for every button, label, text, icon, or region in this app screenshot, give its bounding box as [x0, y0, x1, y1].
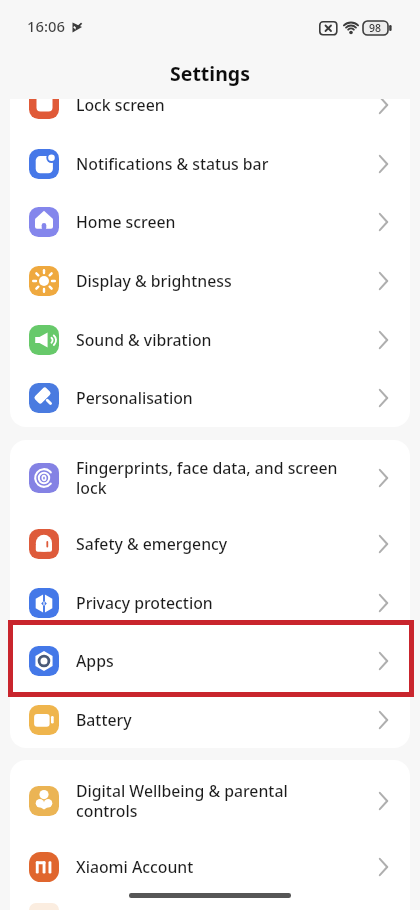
staticText: Display & brightness — [76, 270, 375, 292]
staticText: Fingerprints, face data, and screen lock — [76, 457, 375, 499]
button[interactable]: Privacy protection — [29, 573, 388, 632]
button[interactable]: Xiaomi Account — [29, 837, 388, 896]
staticText: Lock screen — [76, 99, 165, 116]
button[interactable]: Apps — [29, 631, 388, 690]
button[interactable]: Battery — [29, 690, 388, 748]
button[interactable]: Fingerprints, face data, and screen lock — [29, 441, 388, 514]
staticText: Sound & vibration — [76, 329, 375, 351]
staticText: Privacy protection — [76, 592, 375, 614]
button[interactable]: Home screen — [29, 192, 388, 251]
button[interactable]: Sound & vibration — [29, 310, 388, 369]
staticText: Personalisation — [76, 387, 375, 409]
button[interactable]: Display & brightness — [29, 251, 388, 310]
staticText: 98 — [369, 21, 382, 35]
staticText: Xiaomi Account — [76, 856, 375, 878]
button[interactable]: Lock screen — [10, 99, 410, 134]
button[interactable]: Notifications & status bar — [29, 134, 388, 193]
button[interactable]: Personalisation — [29, 368, 388, 427]
button[interactable]: Safety & emergency — [29, 514, 388, 573]
staticText: 16:06 — [27, 16, 65, 36]
staticText: Safety & emergency — [76, 533, 375, 555]
staticText: Battery — [76, 709, 375, 731]
staticText: Home screen — [76, 211, 375, 233]
staticText: Digital Wellbeing & parental controls — [76, 780, 375, 822]
staticText: Settings — [170, 60, 250, 87]
staticText: Apps — [76, 650, 375, 672]
staticText: Notifications & status bar — [76, 153, 375, 175]
button[interactable]: Digital Wellbeing & parental controls — [29, 764, 388, 837]
